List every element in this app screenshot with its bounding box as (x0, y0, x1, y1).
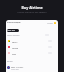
button[interactable]: Glo (6, 50, 58, 56)
staticText: Recent (7, 60, 13, 62)
staticText: Glo (12, 52, 16, 55)
staticText: Select network (7, 34, 20, 36)
button[interactable]: 0803 123 4567 (7, 29, 19, 32)
staticText: Buy Airtime (0, 5, 64, 10)
staticText: 0803 123 4567 (7, 29, 19, 32)
staticText: 2 days ago (11, 68, 19, 70)
staticText: MTN (12, 40, 18, 43)
staticText: Change (47, 22, 53, 24)
button[interactable]: MTN (6, 38, 58, 44)
button[interactable]: 0803 123 4567 (7, 65, 57, 70)
staticText: Instant top-up for any network (0, 11, 64, 14)
staticText: 0803 123 4567 (11, 66, 24, 68)
button[interactable]: Airtel (6, 44, 58, 50)
staticText: Airtel (12, 46, 19, 49)
button[interactable]: Network MTN (54, 22, 56, 24)
staticText: Phone number (7, 21, 21, 24)
